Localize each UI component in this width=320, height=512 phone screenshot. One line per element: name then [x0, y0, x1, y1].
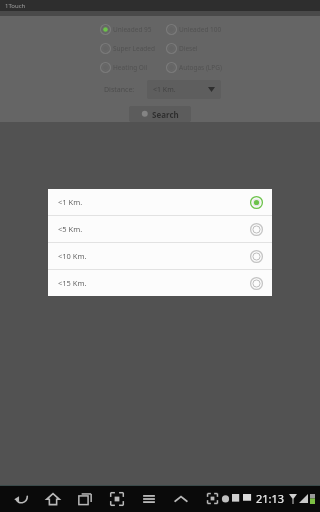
button[interactable]: Expand	[170, 488, 192, 510]
button[interactable]: <10 Km.	[48, 243, 272, 269]
button[interactable]: Autogas (LPG)	[166, 58, 236, 77]
staticText: 1Touch	[5, 2, 26, 10]
button[interactable]: <15 Km.	[48, 270, 272, 296]
button[interactable]: Heating Oil	[100, 58, 162, 77]
staticText: Unleaded 95	[113, 25, 152, 34]
button[interactable]: Screenshot	[106, 488, 128, 510]
button[interactable]: <1 Km.	[147, 80, 221, 99]
button[interactable]: Unleaded 100	[166, 20, 236, 39]
staticText: Search	[152, 109, 179, 120]
staticText: Unleaded 100	[179, 25, 222, 34]
staticText: <10 Km.	[58, 251, 87, 261]
staticText: Diesel	[179, 44, 198, 53]
staticText: 21:13	[256, 491, 285, 506]
staticText: <1 Km.	[153, 85, 176, 95]
staticText: <5 Km.	[58, 224, 83, 234]
staticText: Distance:	[104, 85, 135, 95]
button[interactable]: Super Leaded	[100, 39, 162, 58]
button[interactable]: Menu	[138, 488, 160, 510]
button[interactable]: Search	[129, 106, 191, 122]
button[interactable]: Back	[10, 488, 32, 510]
staticText: Super Leaded	[113, 44, 156, 53]
button[interactable]: Recent apps	[74, 488, 96, 510]
staticText: <1 Km.	[58, 197, 83, 207]
staticText: <15 Km.	[58, 278, 87, 288]
button[interactable]: Home	[42, 488, 64, 510]
staticText: Heating Oil	[113, 63, 148, 72]
button[interactable]: <5 Km.	[48, 216, 272, 242]
staticText: Autogas (LPG)	[179, 63, 222, 72]
button[interactable]: Unleaded 95	[100, 20, 162, 39]
button[interactable]: Diesel	[166, 39, 236, 58]
button[interactable]: <1 Km.	[48, 189, 272, 215]
